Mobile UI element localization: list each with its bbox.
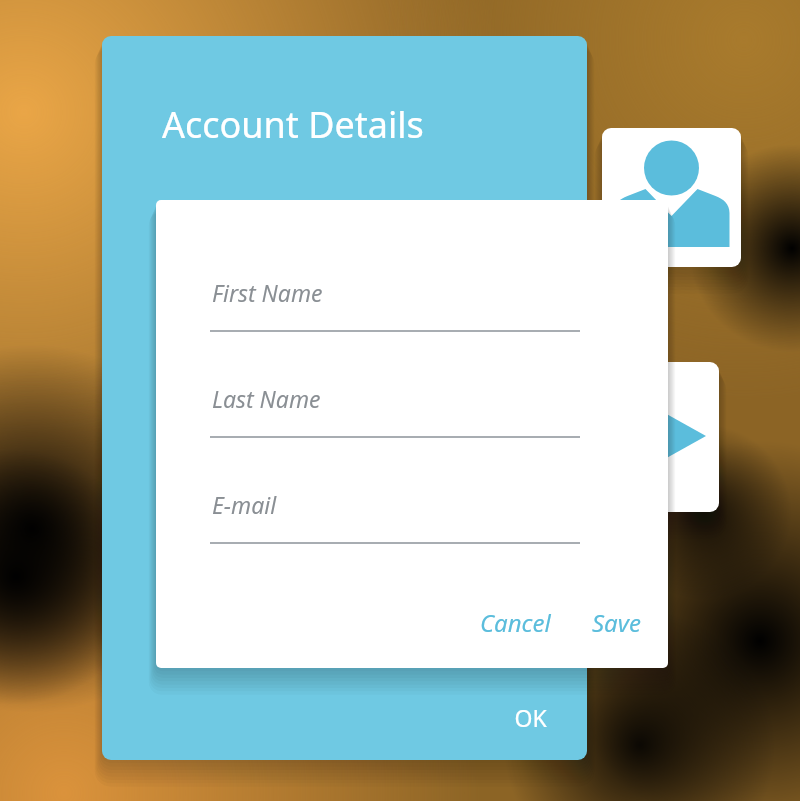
button[interactable] [210, 270, 580, 336]
button[interactable] [468, 600, 558, 644]
button[interactable] [580, 600, 652, 644]
button[interactable]: Profile picture [602, 128, 741, 267]
button[interactable]: Play [640, 362, 719, 512]
button[interactable] [210, 482, 580, 548]
button[interactable] [499, 695, 563, 739]
button[interactable] [210, 376, 580, 442]
